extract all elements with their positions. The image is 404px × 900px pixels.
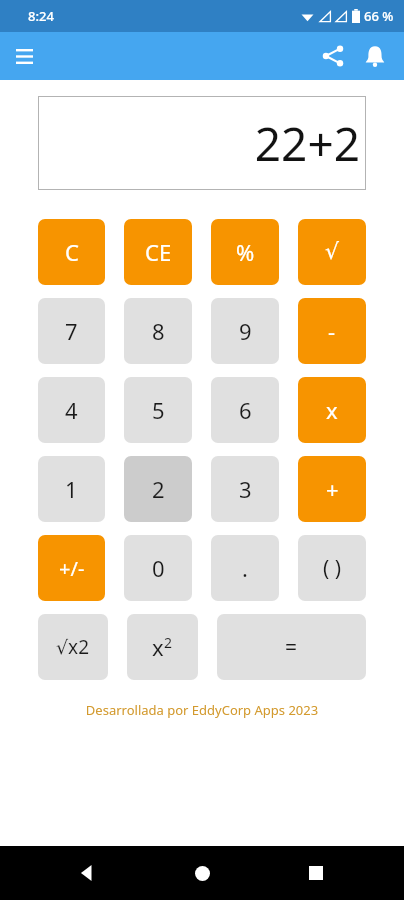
staticText: Desarrollada por EddyCorp Apps 2023	[38, 701, 366, 719]
button[interactable]: -	[298, 298, 366, 364]
button[interactable]: 1	[38, 456, 105, 522]
button[interactable]: =	[217, 614, 366, 680]
staticText: .	[242, 553, 248, 583]
staticText: 0	[152, 553, 165, 583]
button[interactable]: Menu	[4, 36, 44, 76]
staticText: 4	[65, 395, 78, 425]
button[interactable]: .	[211, 535, 279, 601]
button[interactable]: x	[127, 614, 198, 680]
button[interactable]: 7	[38, 298, 105, 364]
staticText: 22+2	[254, 112, 360, 175]
staticText: +	[326, 474, 339, 504]
staticText: CE	[145, 237, 172, 267]
staticText: x	[152, 632, 164, 662]
staticText: C	[65, 237, 79, 267]
button[interactable]: √	[298, 219, 366, 285]
staticText: 8:24	[28, 7, 54, 25]
button[interactable]: %	[211, 219, 279, 285]
button[interactable]: Back	[70, 855, 106, 891]
staticText: √	[325, 239, 340, 265]
button[interactable]: 5	[124, 377, 192, 443]
button[interactable]: 8	[124, 298, 192, 364]
button[interactable]: C	[38, 219, 105, 285]
staticText: 8	[152, 316, 165, 346]
button[interactable]: 9	[211, 298, 279, 364]
button[interactable]: ( )	[298, 535, 366, 601]
staticText: 1	[65, 474, 78, 504]
button[interactable]: 3	[211, 456, 279, 522]
staticText: 2	[164, 633, 173, 652]
staticText: x	[326, 395, 338, 425]
staticText: 3	[239, 474, 252, 504]
staticText: +/-	[59, 555, 85, 582]
staticText: 5	[152, 395, 165, 425]
button[interactable]: 4	[38, 377, 105, 443]
button[interactable]: +/-	[38, 535, 105, 601]
button[interactable]: Recent apps	[298, 855, 334, 891]
staticText: =	[285, 633, 298, 662]
staticText: 9	[239, 316, 252, 346]
button[interactable]: 6	[211, 377, 279, 443]
button[interactable]: 2	[124, 456, 192, 522]
button[interactable]: 0	[124, 535, 192, 601]
staticText: 6	[239, 395, 252, 425]
button[interactable]: √x2	[38, 614, 108, 680]
button[interactable]: Home	[184, 855, 220, 891]
staticText: √x2	[56, 634, 90, 660]
staticText: %	[236, 237, 255, 267]
staticText: 66 %	[364, 7, 394, 25]
button[interactable]: CE	[124, 219, 192, 285]
staticText: ( )	[323, 554, 342, 583]
staticText: 7	[65, 316, 78, 346]
button[interactable]: x	[298, 377, 366, 443]
button[interactable]: +	[298, 456, 366, 522]
button[interactable]: Notifications	[354, 35, 396, 77]
staticText: 2	[152, 474, 165, 504]
staticText: -	[328, 316, 336, 346]
button[interactable]: Share	[312, 35, 354, 77]
